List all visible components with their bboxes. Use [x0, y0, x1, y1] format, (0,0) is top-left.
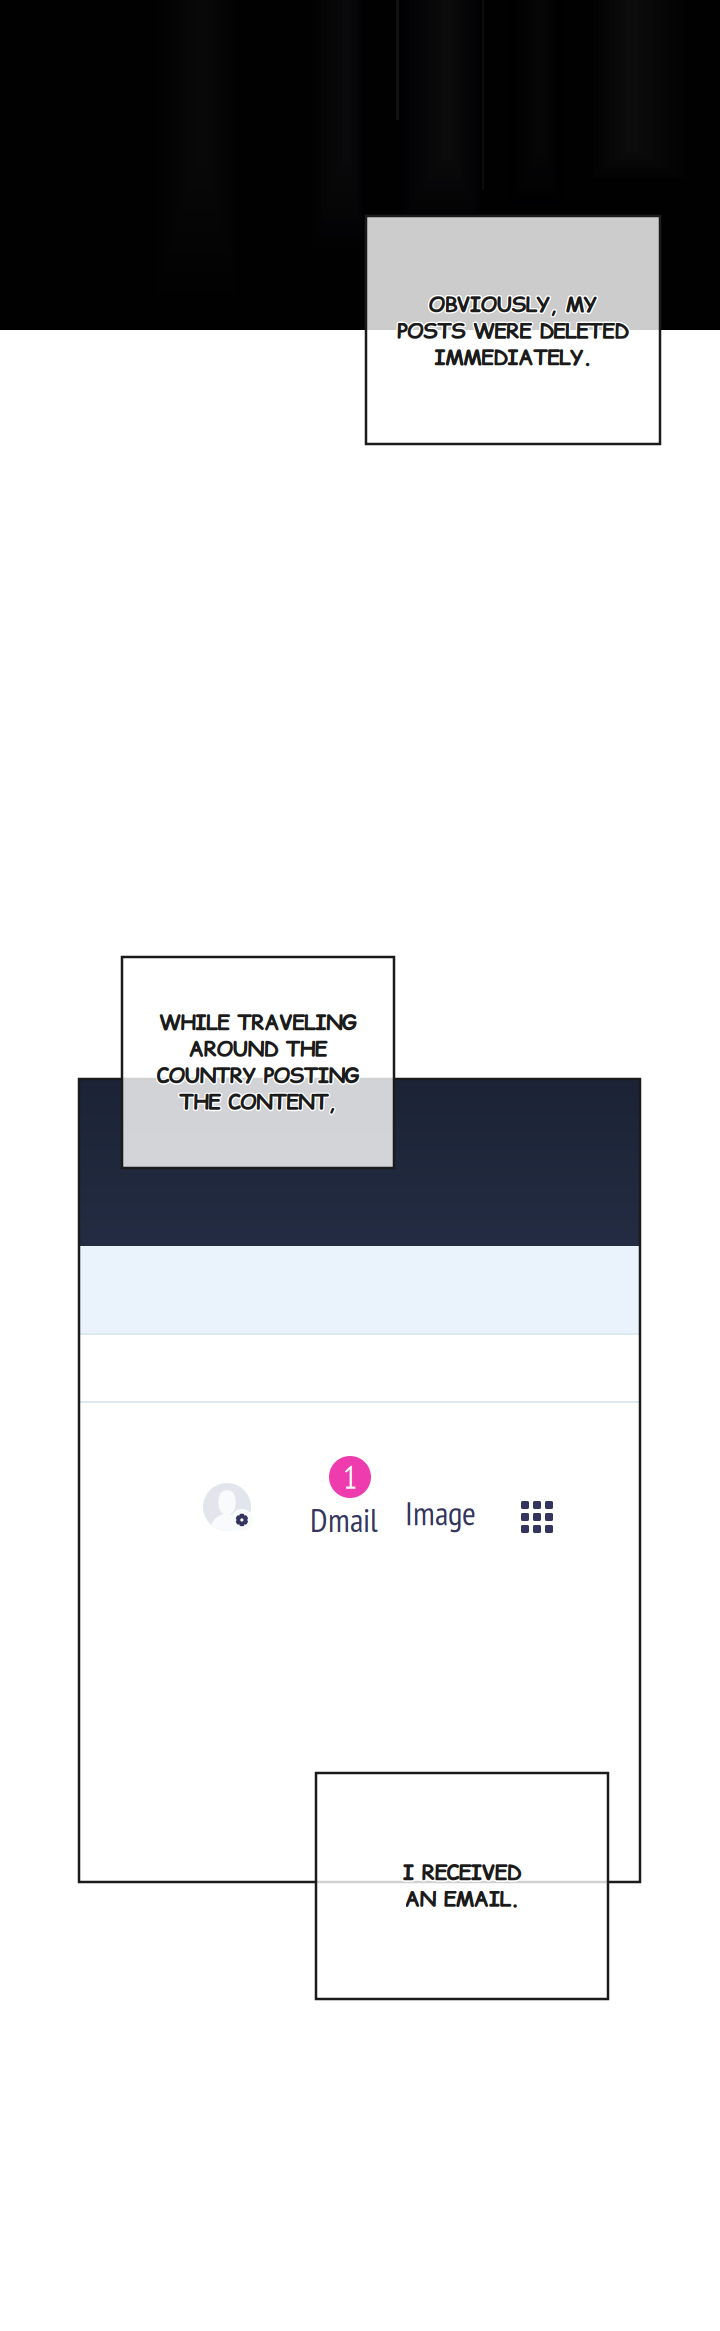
staticText: COUNTRY POSTING	[156, 1061, 359, 1091]
staticText: THE CONTENT,	[179, 1087, 337, 1117]
staticText: OBVIOUSLY, MY	[428, 288, 597, 318]
staticText: IMMEDIATELY.	[435, 344, 593, 373]
staticText: POSTS WERE DELETED	[396, 317, 628, 347]
staticText: AN EMAIL.	[404, 1886, 519, 1915]
staticText: AROUND THE	[188, 1036, 327, 1065]
staticText: THE CONTENT,	[178, 1088, 336, 1118]
staticText: AROUND THE	[188, 1033, 327, 1063]
staticText: POSTS WERE DELETED	[398, 315, 630, 345]
staticText: COUNTRY POSTING	[156, 1060, 359, 1089]
staticText: IMMEDIATELY.	[434, 344, 592, 374]
staticText: 1	[343, 1456, 357, 1498]
staticText: OBVIOUSLY, MY	[428, 289, 597, 319]
staticText: OBVIOUSLY, MY	[429, 291, 598, 320]
staticText: WHILE TRAVELING	[160, 1009, 358, 1039]
staticText: COUNTRY POSTING	[156, 1062, 359, 1092]
staticText: THE CONTENT,	[178, 1087, 336, 1117]
staticText: POSTS WERE DELETED	[398, 316, 630, 346]
staticText: AN EMAIL.	[403, 1884, 518, 1914]
staticText: I RECEIVED	[402, 1857, 521, 1887]
staticText: I RECEIVED	[402, 1859, 521, 1889]
staticText: THE CONTENT,	[180, 1087, 338, 1117]
staticText: THE CONTENT,	[179, 1089, 337, 1118]
staticText: COUNTRY POSTING	[157, 1060, 360, 1090]
staticText: OBVIOUSLY, MY	[430, 290, 599, 320]
staticText: POSTS WERE DELETED	[398, 317, 630, 347]
staticText: OBVIOUSLY, MY	[428, 290, 597, 320]
staticText: AN EMAIL.	[406, 1884, 521, 1914]
staticText: IMMEDIATELY.	[433, 342, 591, 372]
staticText: Image	[405, 1491, 476, 1534]
staticText: IMMEDIATELY.	[434, 343, 592, 373]
staticText: POSTS WERE DELETED	[397, 318, 629, 347]
staticText: THE CONTENT,	[179, 1086, 337, 1116]
staticText: I RECEIVED	[402, 1858, 521, 1888]
staticText: AN EMAIL.	[404, 1884, 519, 1914]
staticText: I RECEIVED	[402, 1859, 521, 1889]
staticText: AROUND THE	[188, 1034, 327, 1064]
button[interactable]: Image	[405, 1498, 477, 1528]
staticText: AN EMAIL.	[404, 1885, 519, 1915]
staticText: WHILE TRAVELING	[158, 1009, 356, 1039]
staticText: OBVIOUSLY, MY	[427, 290, 596, 320]
staticText: I RECEIVED	[401, 1858, 520, 1888]
staticText: AROUND THE	[188, 1033, 327, 1063]
staticText: WHILE TRAVELING	[160, 1007, 358, 1037]
staticText: COUNTRY POSTING	[156, 1060, 359, 1090]
button[interactable]: 1	[310, 1456, 395, 1528]
button[interactable]: All apps	[521, 1501, 553, 1533]
staticText: AROUND THE	[189, 1033, 328, 1063]
staticText: WHILE TRAVELING	[159, 1007, 357, 1036]
staticText: POSTS WERE DELETED	[396, 315, 628, 345]
staticText: AN EMAIL.	[404, 1883, 519, 1913]
staticText: I RECEIVED	[402, 1857, 521, 1886]
staticText: AROUND THE	[189, 1035, 328, 1065]
staticText: Dmail	[310, 1498, 378, 1541]
staticText: IMMEDIATELY.	[433, 344, 591, 373]
staticText: AROUND THE	[190, 1034, 329, 1064]
staticText: AROUND THE	[187, 1034, 326, 1064]
staticText: IMMEDIATELY.	[434, 341, 592, 371]
staticText: IMMEDIATELY.	[435, 343, 593, 373]
staticText: I RECEIVED	[404, 1858, 523, 1888]
staticText: POSTS WERE DELETED	[396, 316, 628, 346]
staticText: WHILE TRAVELING	[158, 1007, 356, 1037]
staticText: I RECEIVED	[403, 1859, 522, 1889]
staticText: AN EMAIL.	[405, 1885, 520, 1915]
staticText: WHILE TRAVELING	[159, 1009, 357, 1039]
staticText: COUNTRY POSTING	[158, 1061, 361, 1091]
staticText: OBVIOUSLY, MY	[428, 291, 597, 320]
staticText: THE CONTENT,	[180, 1088, 338, 1118]
staticText: AROUND THE	[188, 1035, 327, 1065]
staticText: COUNTRY POSTING	[155, 1061, 358, 1091]
staticText: I RECEIVED	[403, 1857, 522, 1887]
staticText: POSTS WERE DELETED	[397, 315, 629, 345]
staticText: OBVIOUSLY, MY	[428, 291, 597, 321]
staticText: IMMEDIATELY.	[435, 342, 593, 372]
staticText: THE CONTENT,	[178, 1086, 336, 1116]
staticText: POSTS WERE DELETED	[397, 316, 629, 346]
staticText: THE CONTENT,	[180, 1086, 338, 1116]
staticText: WHILE TRAVELING	[159, 1008, 357, 1038]
staticText: AN EMAIL.	[404, 1883, 519, 1913]
staticText: OBVIOUSLY, MY	[429, 289, 598, 319]
staticText: COUNTRY POSTING	[156, 1062, 359, 1092]
staticText: WHILE TRAVELING	[160, 1008, 358, 1038]
staticText: COUNTRY POSTING	[157, 1062, 360, 1092]
staticText: AN EMAIL.	[405, 1883, 520, 1913]
staticText: WHILE TRAVELING	[158, 1008, 356, 1038]
staticText: IMMEDIATELY.	[433, 343, 591, 373]
button[interactable]: Account settings	[203, 1483, 254, 1531]
